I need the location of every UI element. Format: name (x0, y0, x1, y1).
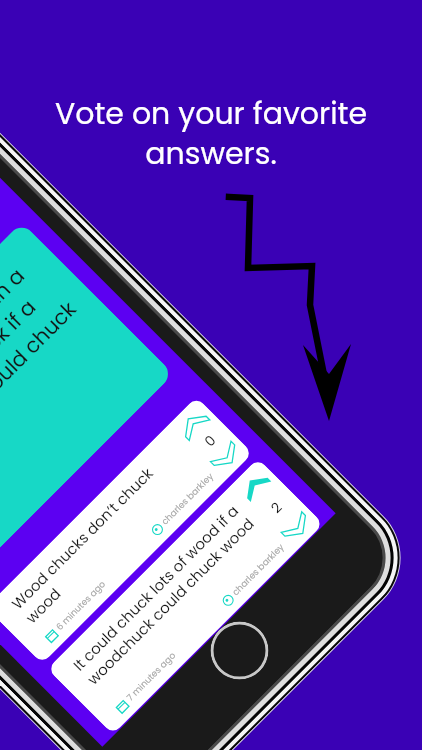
staticText: 0 (200, 431, 220, 451)
staticText: How much wood can a woodchuck chuck if a… (0, 250, 106, 517)
other: Home (198, 609, 280, 691)
staticText: charles barkley (230, 541, 288, 599)
button[interactable]: It could chuck lots of wood if a woodchu… (47, 458, 324, 735)
staticText: It could chuck lots of wood if a woodchu… (68, 496, 262, 689)
staticText: 2 (266, 497, 287, 518)
staticText: Wood chucks don’t chuck wood (7, 434, 201, 628)
staticText: 7 minutes ago (124, 649, 179, 704)
button[interactable]: Wood chucks don’t chuck wood (0, 397, 253, 664)
staticText: charles barkley (159, 470, 217, 528)
staticText: Vote on your favorite answers. (30, 93, 392, 175)
staticText: 6 minutes ago (53, 578, 109, 634)
button[interactable]: How much wood can a woodchuck chuck if a… (0, 222, 174, 585)
